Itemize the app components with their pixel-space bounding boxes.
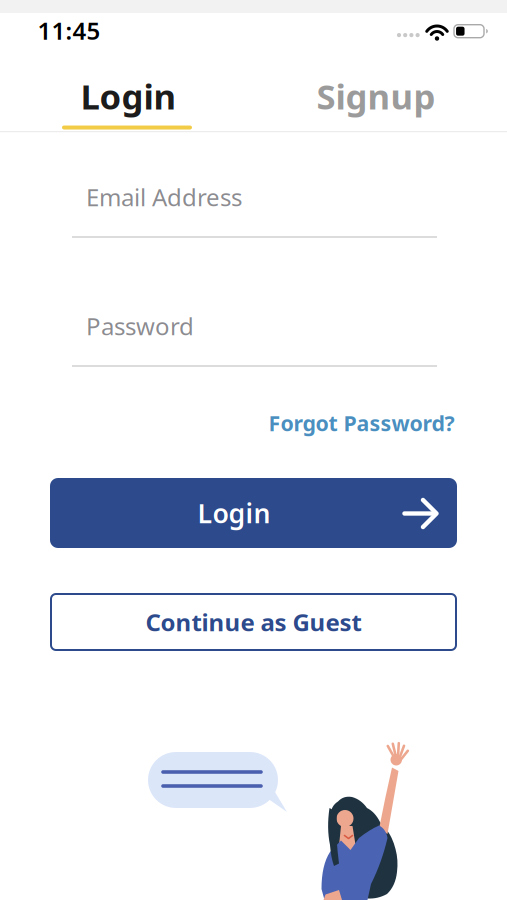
button[interactable]: Login xyxy=(50,478,457,548)
button[interactable]: Continue as Guest xyxy=(51,594,456,650)
button[interactable]: Password xyxy=(0,299,507,379)
staticText: Signup xyxy=(316,73,435,119)
button[interactable]: Login xyxy=(48,70,208,122)
staticText: Password xyxy=(86,310,194,342)
staticText: Login xyxy=(197,495,270,531)
button[interactable]: Signup xyxy=(291,70,461,122)
button[interactable]: Forgot Password? xyxy=(194,408,454,438)
button[interactable]: Email Address xyxy=(0,170,507,250)
staticText: Email Address xyxy=(86,181,242,213)
staticText: 11:45 xyxy=(37,15,100,46)
staticText: Login xyxy=(80,73,176,119)
staticText: Forgot Password? xyxy=(268,409,454,437)
staticText: Continue as Guest xyxy=(145,606,361,638)
